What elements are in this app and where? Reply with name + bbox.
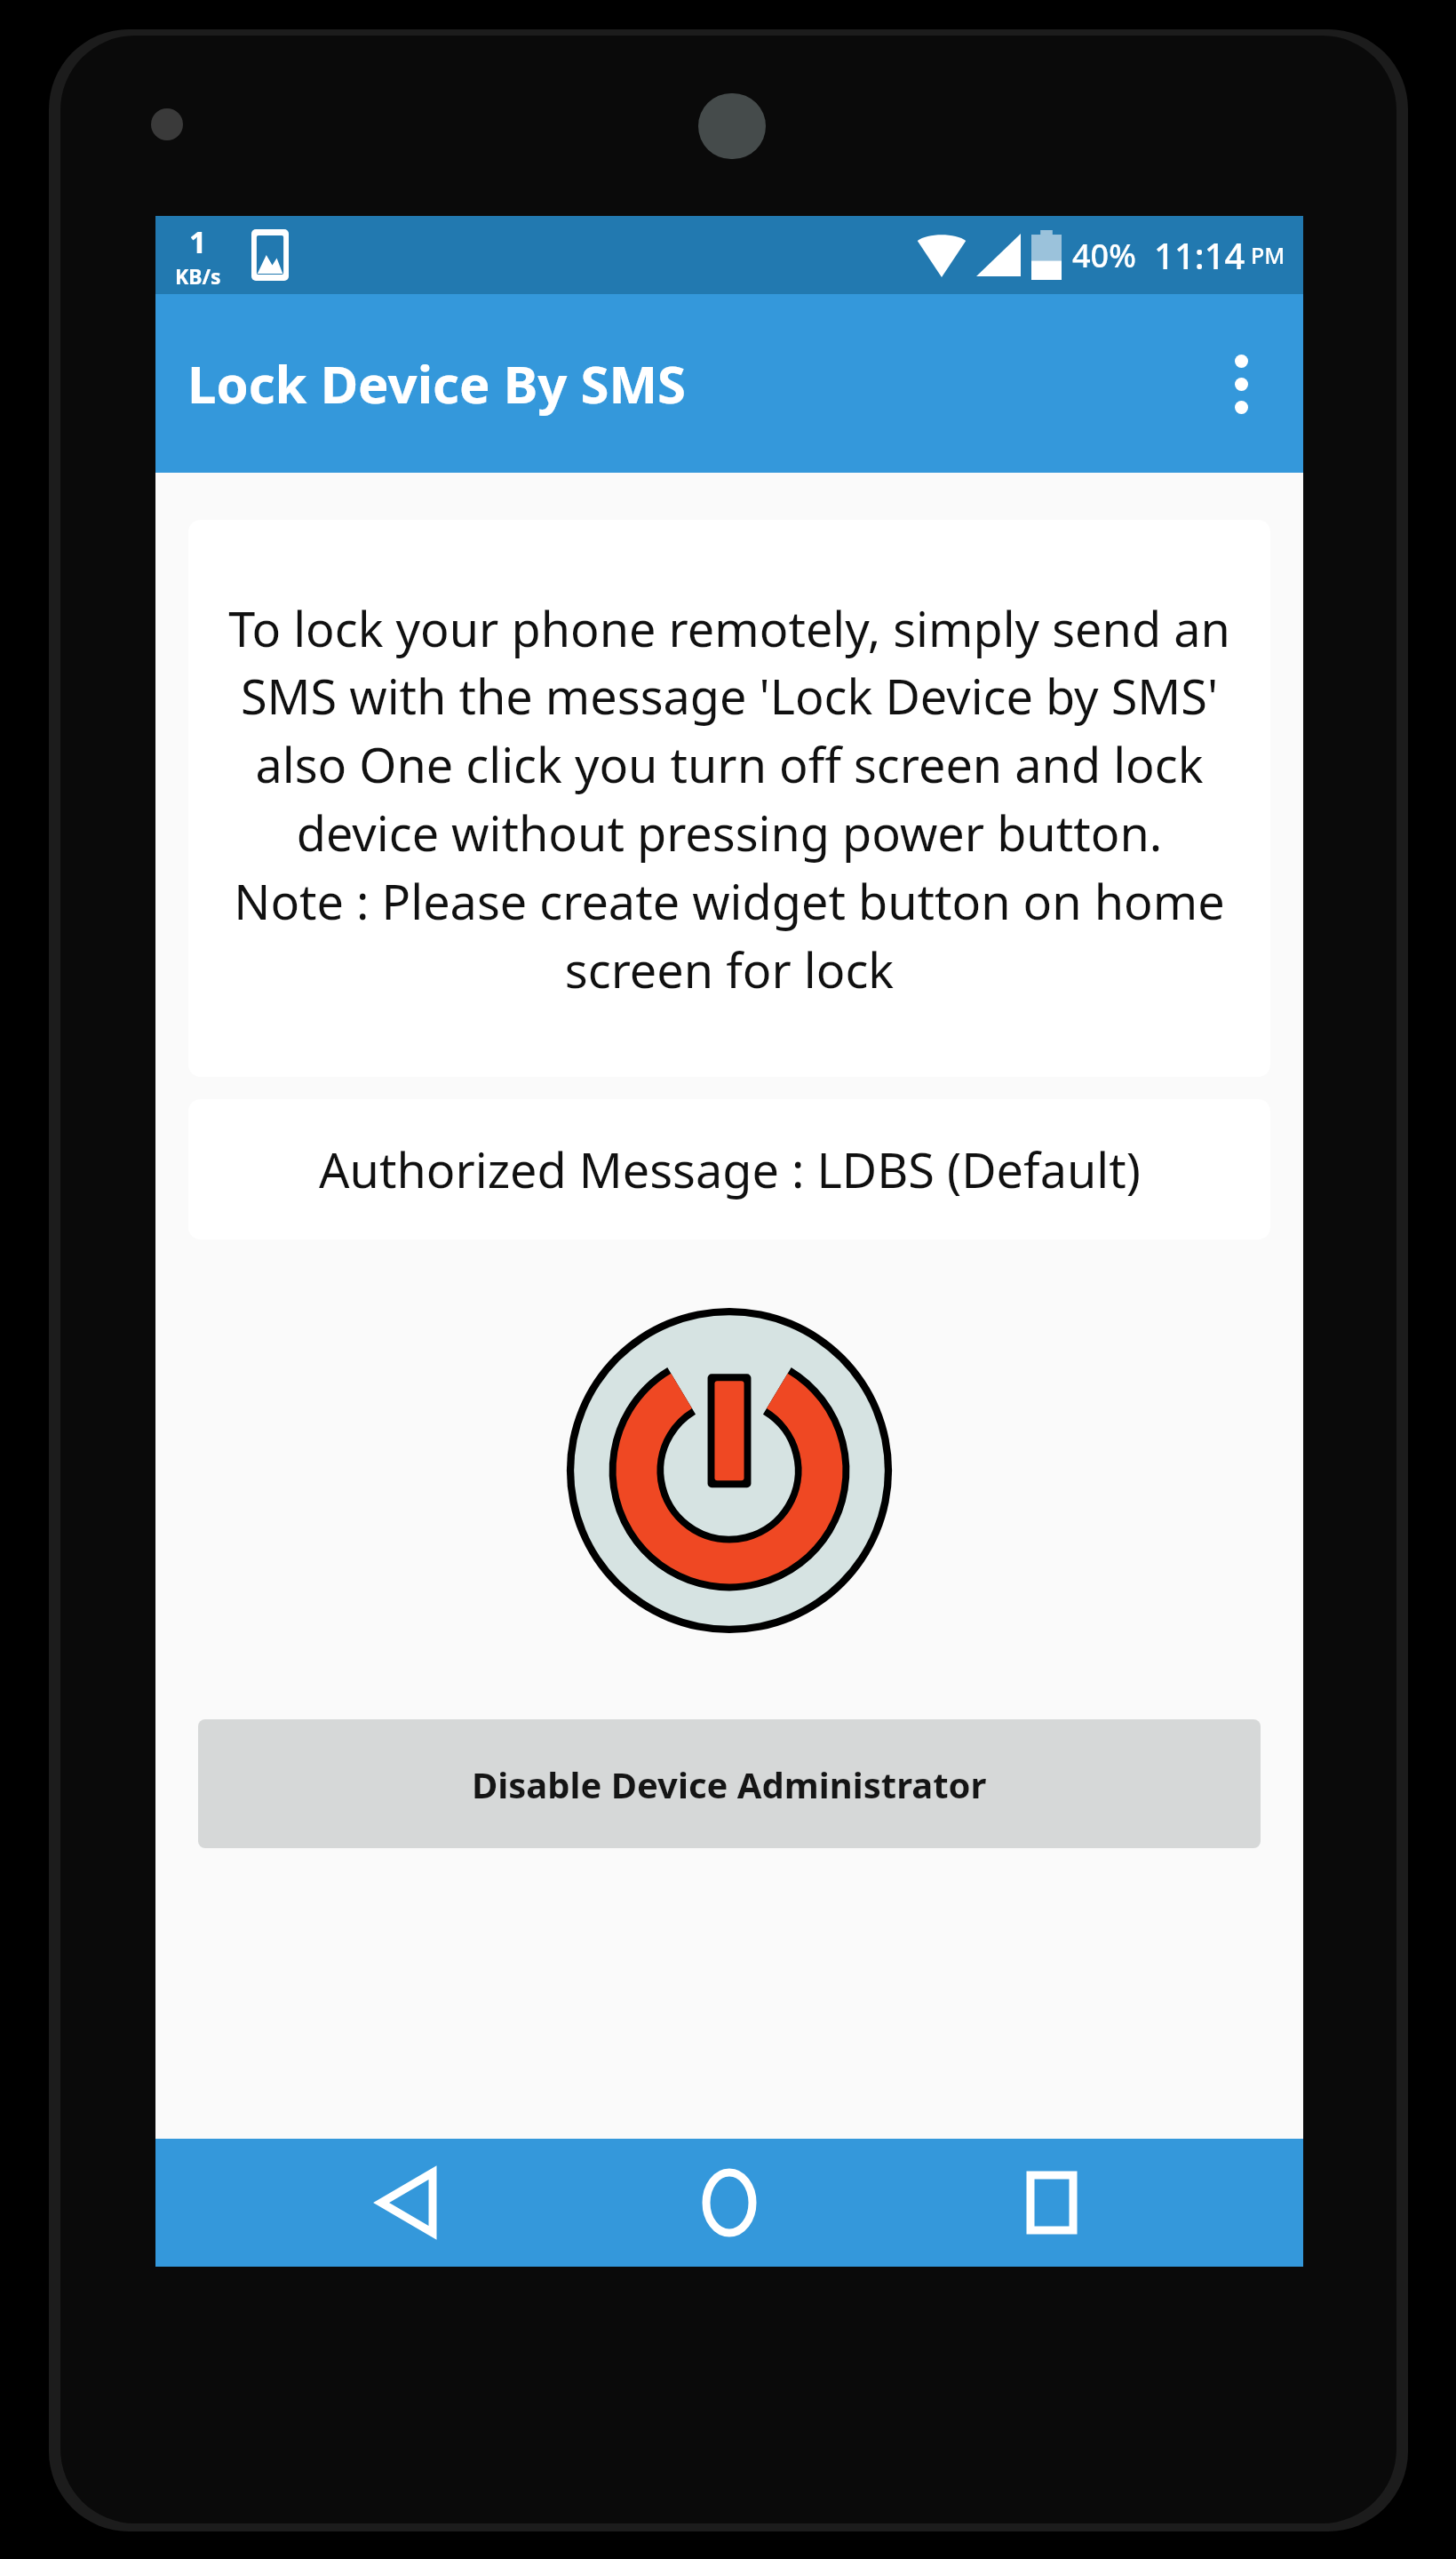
staticText: Authorized Message : LDBS (Default) bbox=[319, 1136, 1141, 1202]
button[interactable]: Home bbox=[658, 2139, 800, 2267]
staticText: 40% bbox=[1072, 234, 1136, 277]
staticText: KB/s bbox=[175, 262, 221, 290]
staticText: To lock your phone remotely, simply send… bbox=[211, 595, 1247, 1002]
button[interactable]: Disable Device Administrator bbox=[198, 1719, 1261, 1848]
staticText: Disable Device Administrator bbox=[472, 1760, 987, 1808]
button[interactable]: More options bbox=[1198, 341, 1284, 426]
button[interactable]: Authorized Message : LDBS (Default) bbox=[188, 1099, 1270, 1240]
button[interactable]: Lock device bbox=[558, 1299, 901, 1642]
staticText: 11:14 bbox=[1154, 231, 1245, 279]
button[interactable]: To lock your phone remotely, simply send… bbox=[188, 520, 1270, 1077]
button[interactable]: Back bbox=[336, 2139, 478, 2267]
button[interactable]: Recent apps bbox=[981, 2139, 1123, 2267]
staticText: 1 bbox=[189, 221, 207, 262]
staticText: Lock Device By SMS bbox=[187, 348, 687, 419]
staticText: PM bbox=[1251, 240, 1285, 270]
